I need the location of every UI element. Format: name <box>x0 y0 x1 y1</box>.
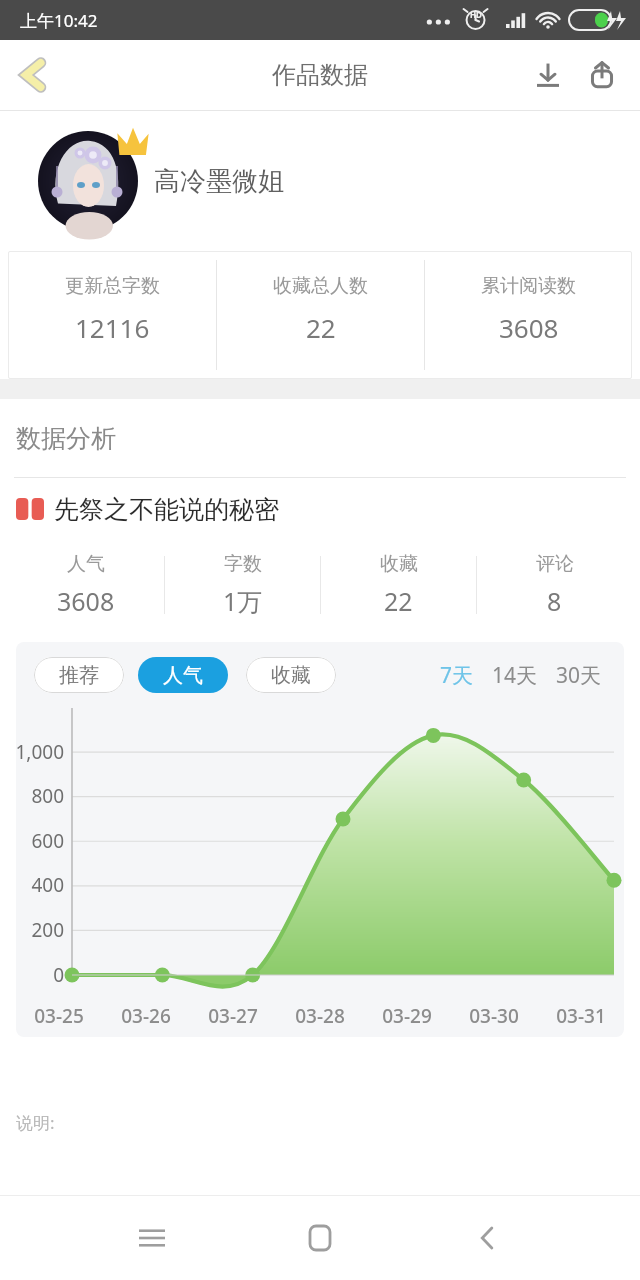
staticText: 高冷墨微姐 <box>154 165 284 198</box>
button[interactable]: Home <box>288 1206 352 1270</box>
staticText: 收藏 <box>380 552 418 576</box>
staticText: 收藏总人数 <box>273 274 368 298</box>
button[interactable]: 累计阅读数 <box>425 251 632 379</box>
button[interactable]: 收藏 <box>246 657 336 693</box>
staticText: HD <box>470 9 482 20</box>
staticText: 字数 <box>224 552 262 576</box>
button[interactable]: 评论 <box>477 540 632 630</box>
staticText: 03-28 <box>295 1003 345 1029</box>
staticText: 上午10:42 <box>20 9 98 32</box>
staticText: 收藏 <box>271 663 311 688</box>
button[interactable]: 推荐 <box>34 657 124 693</box>
staticText: 3608 <box>57 584 115 618</box>
staticText: 03-25 <box>34 1003 84 1029</box>
staticText: 1,000 <box>16 739 64 765</box>
staticText: 数据分析 <box>16 423 116 454</box>
staticText: 03-31 <box>556 1003 606 1029</box>
button[interactable]: Download <box>524 51 572 99</box>
button[interactable]: 30天 <box>552 657 606 694</box>
staticText: 作品数据 <box>272 60 368 90</box>
button[interactable]: 人气 <box>8 540 164 630</box>
staticText: 22 <box>306 310 336 345</box>
staticText: 400 <box>31 872 64 898</box>
staticText: 200 <box>31 917 64 943</box>
button[interactable]: Menu <box>120 1206 184 1270</box>
staticText: 03-30 <box>469 1003 519 1029</box>
staticText: 先祭之不能说的秘密 <box>54 494 279 525</box>
button[interactable]: 先祭之不能说的秘密 <box>0 478 640 540</box>
staticText: 评论 <box>536 552 574 576</box>
button[interactable]: Share <box>578 51 626 99</box>
staticText: 更新总字数 <box>65 274 160 298</box>
button[interactable]: 人气 <box>138 657 228 693</box>
staticText: 1万 <box>223 584 263 618</box>
staticText: 600 <box>31 828 64 854</box>
staticText: 14天 <box>492 661 538 690</box>
staticText: 12116 <box>75 310 150 345</box>
staticText: 0 <box>53 962 64 988</box>
staticText: 人气 <box>163 663 203 688</box>
button[interactable]: 14天 <box>488 657 542 694</box>
staticText: 03-27 <box>208 1003 258 1029</box>
staticText: 人气 <box>67 552 105 576</box>
staticText: 03-29 <box>382 1003 432 1029</box>
staticText: 累计阅读数 <box>481 274 576 298</box>
staticText: 03-26 <box>121 1003 171 1029</box>
button[interactable]: 更新总字数 <box>8 251 216 379</box>
staticText: 3608 <box>499 310 559 345</box>
staticText: 800 <box>31 783 64 809</box>
staticText: 说明: <box>16 1111 55 1134</box>
button[interactable]: 收藏 <box>321 540 476 630</box>
staticText: 推荐 <box>59 663 99 688</box>
staticText: 22 <box>384 584 413 618</box>
button[interactable]: 字数 <box>165 540 320 630</box>
staticText: 8 <box>547 584 562 618</box>
button[interactable]: 收藏总人数 <box>217 251 424 379</box>
button[interactable]: 高冷墨微姐 <box>0 111 640 251</box>
staticText: 7天 <box>440 661 474 690</box>
button[interactable]: Back <box>6 47 62 103</box>
staticText: 30天 <box>556 661 602 690</box>
button[interactable]: Back <box>456 1206 520 1270</box>
button[interactable]: 7天 <box>436 657 478 694</box>
